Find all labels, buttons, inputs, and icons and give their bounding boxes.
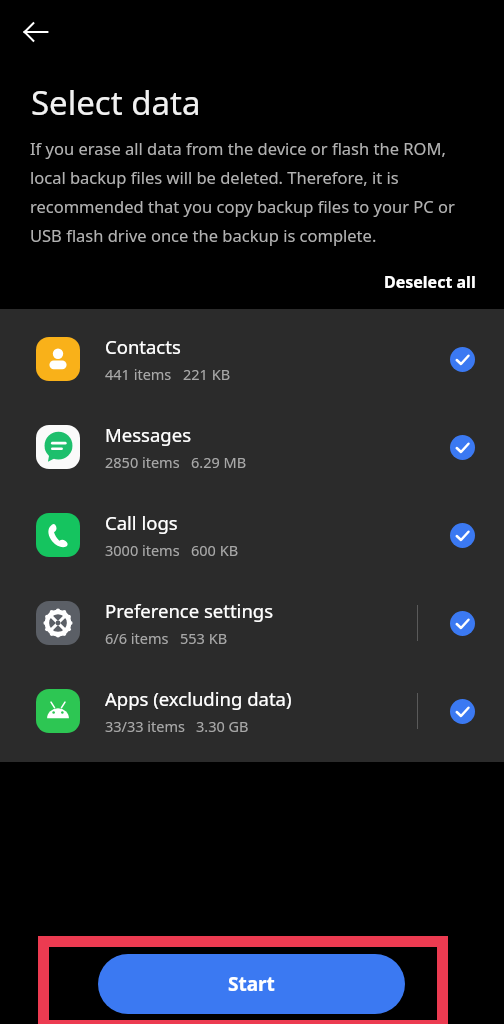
staticText: Contacts — [105, 334, 181, 359]
staticText: Preference settings — [105, 598, 274, 623]
staticText: 221 KB — [183, 364, 231, 384]
button[interactable]: Selected Messages — [442, 427, 482, 467]
staticText: 33/33 items — [105, 716, 185, 736]
button[interactable]: Selected Contacts — [442, 339, 482, 379]
staticText: 6/6 items — [105, 628, 169, 648]
staticText: Messages — [105, 422, 191, 447]
staticText: Deselect all — [384, 271, 476, 293]
button[interactable]: Preference settings — [0, 579, 504, 667]
button[interactable]: Messages — [0, 403, 504, 491]
button[interactable]: Selected Preference settings — [442, 603, 482, 643]
button[interactable]: Back — [14, 10, 58, 54]
staticText: Apps (excluding data) — [105, 686, 292, 711]
staticText: 3.30 GB — [196, 716, 249, 736]
staticText: If you erase all data from the device or… — [30, 137, 478, 247]
staticText: 441 items — [105, 364, 172, 384]
staticText: 553 KB — [180, 628, 228, 648]
button[interactable]: Deselect all — [378, 265, 482, 299]
staticText: 2850 items — [105, 452, 180, 472]
button[interactable]: Apps (excluding data) — [0, 667, 504, 755]
button[interactable]: Selected Call logs — [442, 515, 482, 555]
button[interactable]: Call logs — [0, 491, 504, 579]
button[interactable]: Start — [98, 954, 405, 1014]
button[interactable]: Selected Apps (excluding data) — [442, 691, 482, 731]
staticText: 600 KB — [191, 540, 239, 560]
staticText: 3000 items — [105, 540, 180, 560]
staticText: Select data — [31, 80, 201, 125]
staticText: Call logs — [105, 510, 178, 535]
staticText: 6.29 MB — [191, 452, 247, 472]
button[interactable]: Contacts — [0, 315, 504, 403]
staticText: Start — [228, 971, 275, 997]
